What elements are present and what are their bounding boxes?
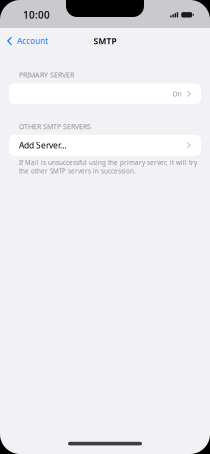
staticText: PRIMARY SERVER <box>19 70 74 80</box>
button[interactable]: On <box>0 84 210 104</box>
staticText: Account <box>17 36 48 46</box>
staticText: On <box>173 89 182 98</box>
button[interactable]: Account <box>0 32 48 50</box>
staticText: Add Server… <box>19 139 67 151</box>
staticText: If Mail is unsuccessful using the primar… <box>19 158 197 175</box>
staticText: SMTP <box>93 35 116 47</box>
staticText: OTHER SMTP SERVERS <box>19 122 91 131</box>
staticText: 10:00 <box>23 8 50 22</box>
button[interactable]: Add Server… <box>0 135 210 156</box>
